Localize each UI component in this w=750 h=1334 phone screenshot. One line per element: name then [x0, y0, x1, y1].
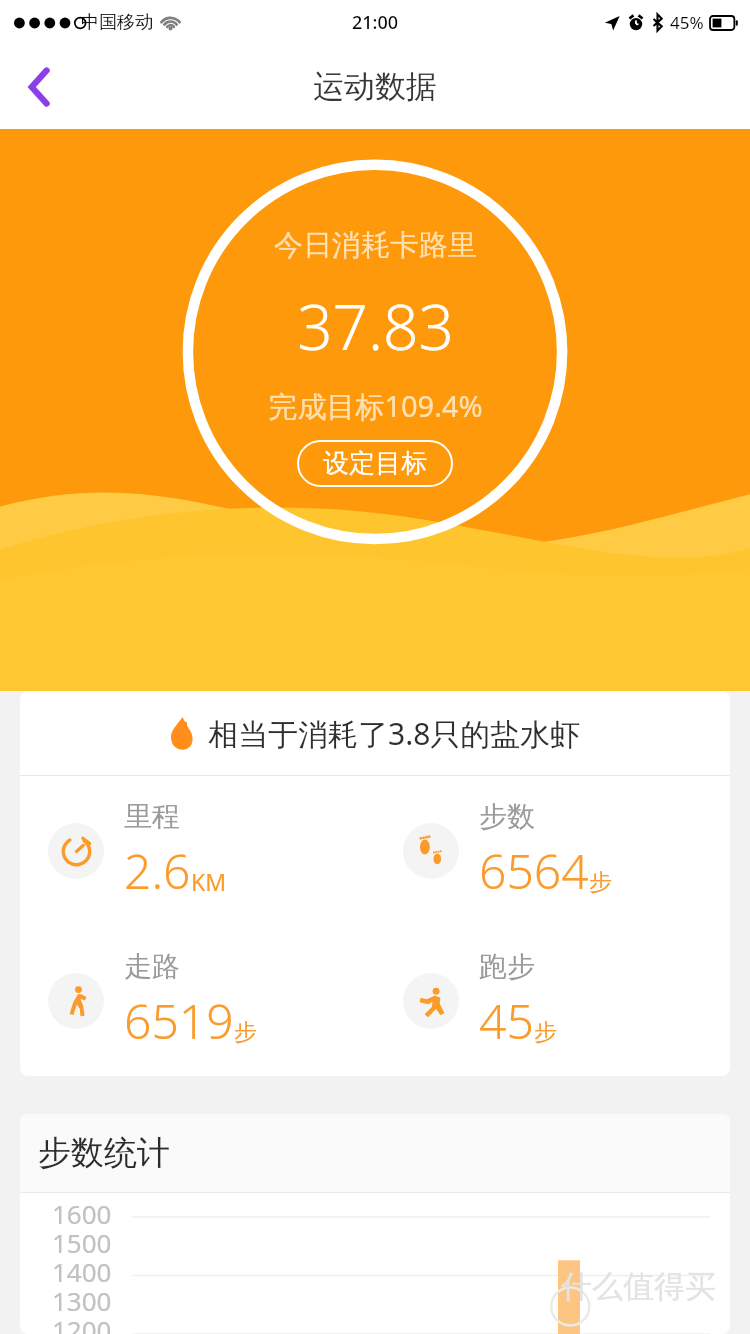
staticText: 相当于消耗了3.8只的盐水虾 [208, 713, 581, 754]
staticText: 1400 [52, 1254, 112, 1283]
button[interactable]: 跑步 [375, 926, 730, 1076]
staticText: 1300 [52, 1283, 112, 1312]
button[interactable]: 走路 [20, 926, 375, 1076]
staticText: 37.83 [297, 284, 454, 368]
button[interactable]: 相当于消耗了3.8只的盐水虾 [20, 691, 730, 775]
staticText: 完成目标109.4% [268, 386, 483, 426]
staticText: 跑步 [479, 949, 535, 984]
staticText: 6519 [124, 988, 234, 1053]
button[interactable]: 步数 [375, 776, 730, 926]
staticText: 步 [589, 868, 612, 897]
staticText: 设定目标 [323, 447, 427, 480]
button[interactable]: 设定目标 [297, 440, 453, 487]
staticText: KM [191, 866, 227, 897]
button[interactable]: 步数统计 [20, 1114, 730, 1334]
staticText: 6564 [479, 838, 589, 903]
button[interactable]: 里程 [20, 776, 375, 926]
staticText: 1500 [52, 1225, 112, 1254]
button[interactable]: Back [8, 56, 70, 118]
staticText: 步数 [479, 799, 535, 834]
staticText: 什么值得买 [561, 1267, 716, 1306]
staticText: 45 [479, 988, 534, 1053]
staticText: 步 [234, 1018, 257, 1047]
staticText: 运动数据 [313, 67, 437, 106]
staticText: 步数统计 [38, 1132, 170, 1174]
staticText: 今日消耗卡路里 [274, 227, 477, 264]
staticText: 1200 [52, 1312, 112, 1334]
staticText: 2.6 [124, 838, 191, 903]
staticText: 步 [534, 1018, 557, 1047]
staticText: 21:00 [352, 10, 399, 35]
staticText: 走路 [124, 949, 180, 984]
staticText: 1600 [52, 1196, 112, 1225]
staticText: 里程 [124, 799, 180, 834]
staticText: 中国移动 [81, 11, 153, 34]
staticText: 45% [670, 11, 704, 34]
